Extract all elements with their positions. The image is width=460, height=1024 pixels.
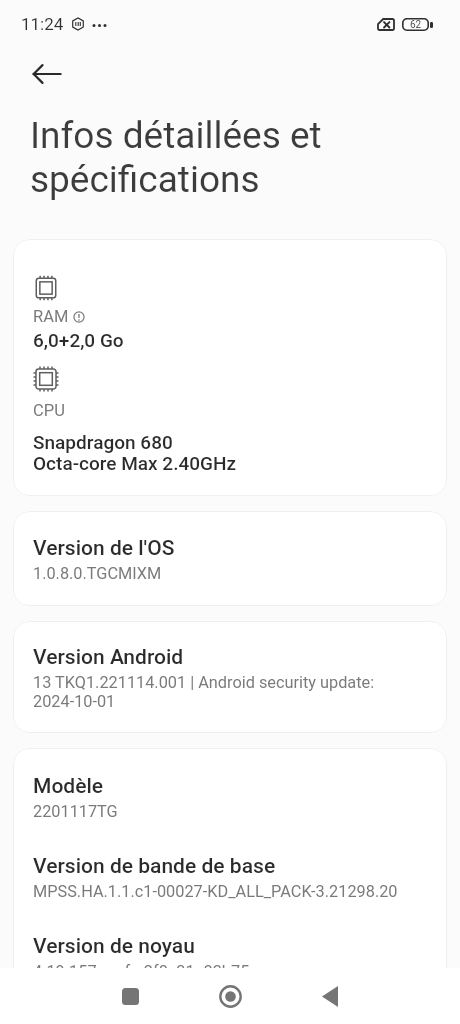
- staticText: CPU: [33, 401, 65, 420]
- staticText: Version de bande de base: [33, 854, 276, 879]
- staticText: 62: [410, 19, 422, 31]
- staticText: Snapdragon 680 Octa-core Max 2.40GHz: [33, 431, 237, 475]
- staticText: 1.0.8.0.TGCMIXM: [33, 564, 162, 583]
- staticText: 4.19.157-perf-g2f8c31a03b75: [33, 962, 250, 981]
- button[interactable]: Version de l'OS: [13, 511, 447, 606]
- staticText: 13 TKQ1.221114.001 | Android security up…: [33, 673, 375, 711]
- staticText: Version de noyau: [33, 934, 195, 959]
- staticText: Modèle: [33, 774, 104, 799]
- staticText: MPSS.HA.1.1.c1-00027-KD_ALL_PACK-3.21298…: [33, 882, 398, 901]
- button[interactable]: Back: [299, 968, 361, 1024]
- staticText: RAM: [33, 307, 69, 326]
- staticText: Version de l'OS: [33, 536, 175, 561]
- staticText: Version Android: [33, 645, 184, 670]
- button[interactable]: Home: [199, 968, 261, 1024]
- button[interactable]: RAM: [13, 239, 447, 496]
- button[interactable]: Version Android: [13, 621, 447, 733]
- button[interactable]: Back: [21, 48, 73, 100]
- staticText: 6,0+2,0 Go: [33, 329, 124, 351]
- staticText: 2201117TG: [33, 802, 118, 821]
- staticText: 11:24: [21, 14, 64, 34]
- button[interactable]: Modèle: [13, 748, 447, 1001]
- staticText: Infos détaillées et spécifications: [30, 114, 322, 201]
- button[interactable]: Recent apps: [99, 968, 161, 1024]
